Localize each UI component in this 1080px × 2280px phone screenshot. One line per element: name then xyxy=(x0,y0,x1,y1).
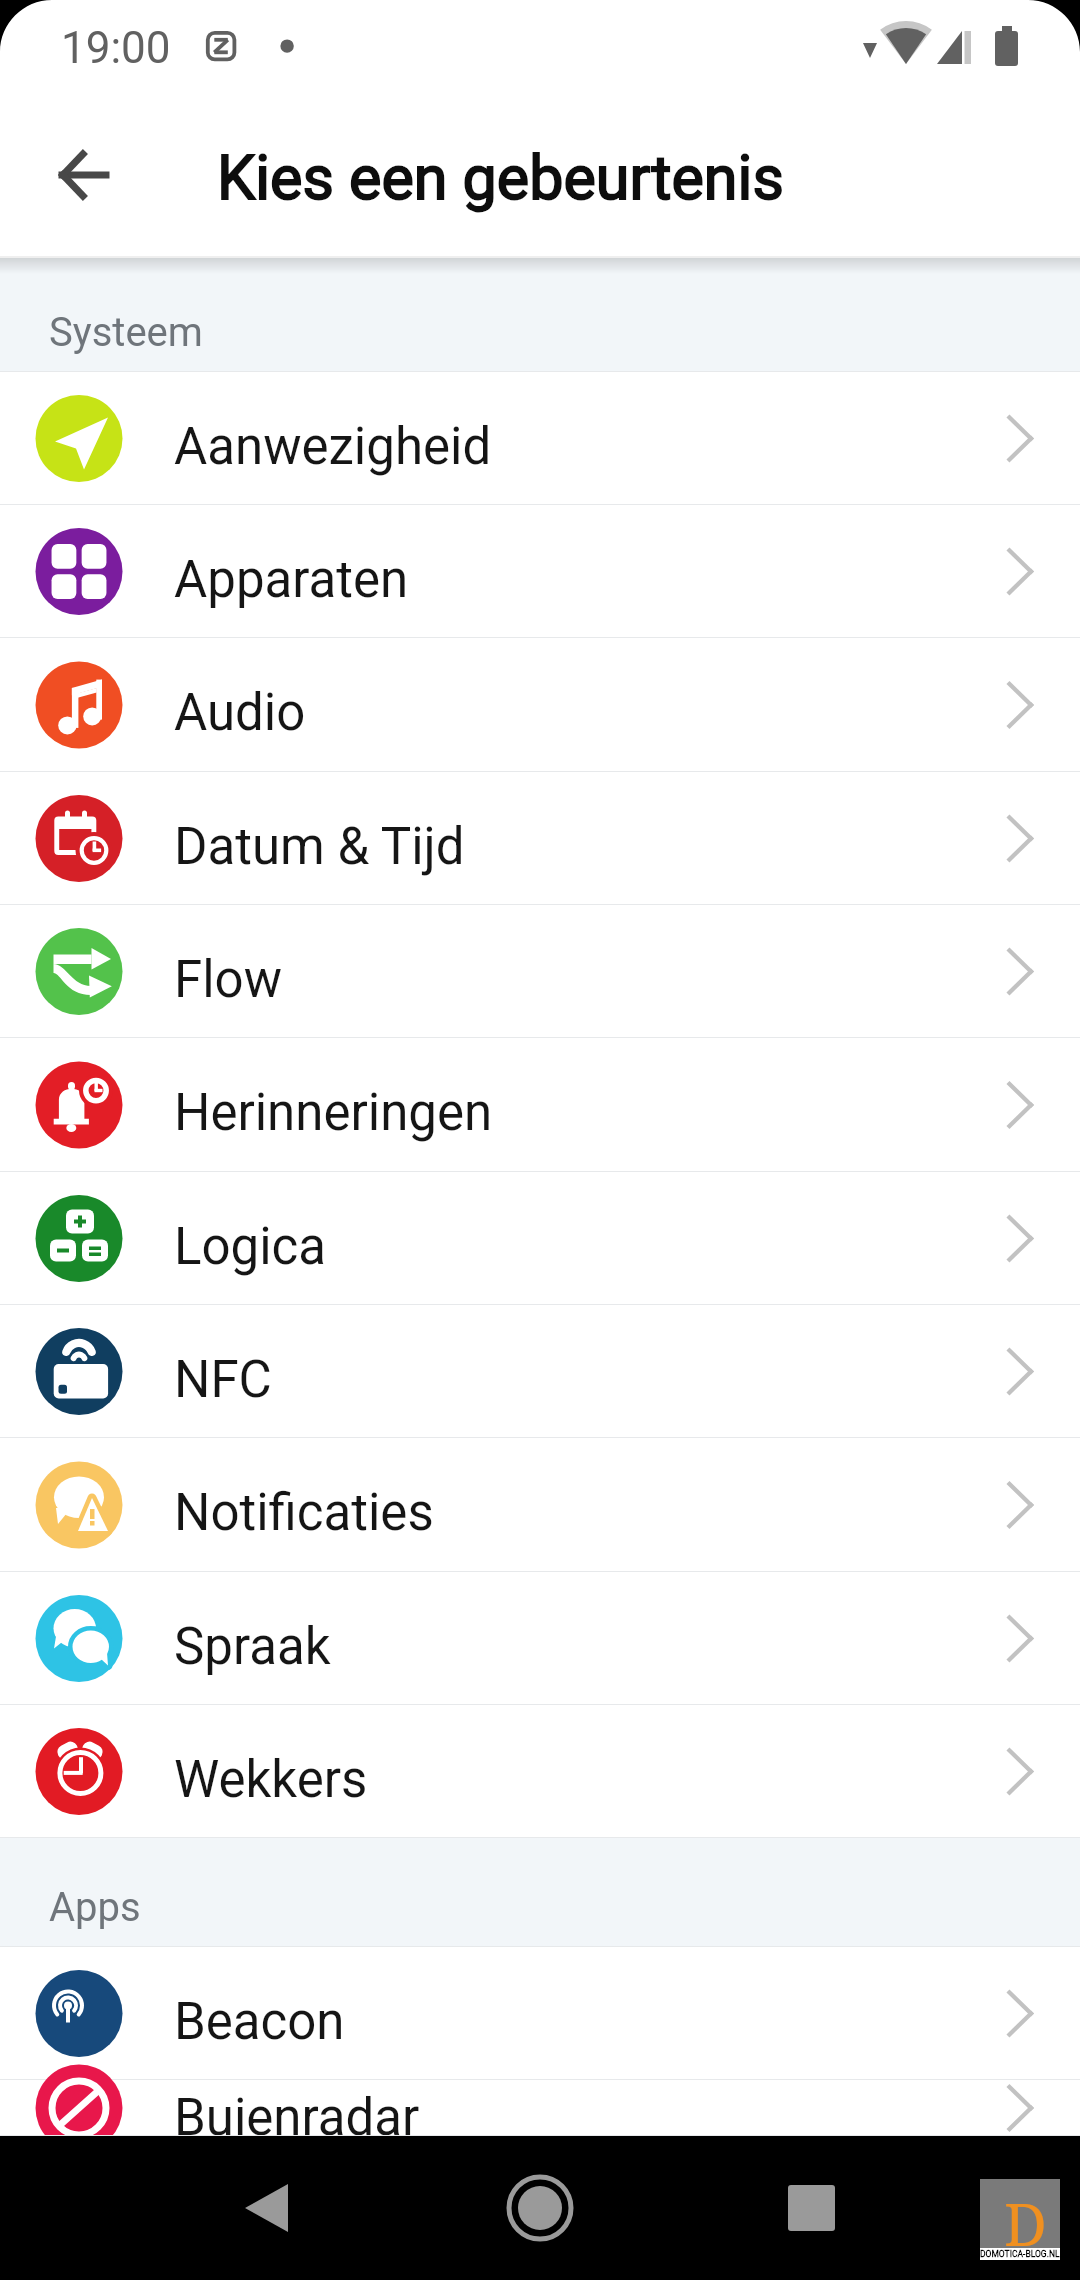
staticText: NFC xyxy=(174,1350,272,1410)
button[interactable]: Back xyxy=(200,2138,340,2278)
staticText: Datum & Tijd xyxy=(174,817,465,877)
button[interactable]: Recent apps xyxy=(741,2138,881,2278)
button[interactable]: Wekkers xyxy=(0,1705,1080,1838)
staticText: Wekkers xyxy=(174,1750,368,1810)
button[interactable]: Back xyxy=(33,125,133,225)
button[interactable]: Flow xyxy=(0,905,1080,1038)
staticText: D xyxy=(1004,2183,1047,2263)
button[interactable]: Datum & Tijd xyxy=(0,772,1080,905)
staticText: Notificaties xyxy=(174,1483,434,1543)
button[interactable]: Buienradar xyxy=(0,2080,1080,2136)
staticText: Apps xyxy=(49,1884,141,1931)
staticText: Flow xyxy=(174,950,283,1010)
button[interactable]: Apparaten xyxy=(0,505,1080,638)
button[interactable]: Herinneringen xyxy=(0,1038,1080,1172)
button[interactable]: Home xyxy=(470,2138,610,2278)
staticText: Beacon xyxy=(174,1992,345,2052)
staticText: Logica xyxy=(174,1217,327,1277)
staticText: Herinneringen xyxy=(174,1083,493,1143)
button[interactable]: Audio xyxy=(0,638,1080,772)
staticText: Audio xyxy=(174,683,306,743)
staticText: 19:00 xyxy=(61,22,171,74)
staticText: Aanwezigheid xyxy=(174,417,492,477)
button[interactable]: Beacon xyxy=(0,1947,1080,2080)
button[interactable]: NFC xyxy=(0,1305,1080,1438)
button[interactable]: Spraak xyxy=(0,1572,1080,1705)
staticText: Kies een gebeurtenis xyxy=(217,142,784,213)
staticText: Buienradar xyxy=(174,2088,420,2144)
staticText: Spraak xyxy=(174,1617,331,1677)
staticText: Systeem xyxy=(49,309,203,356)
staticText: Apparaten xyxy=(174,550,409,610)
button[interactable]: Notificaties xyxy=(0,1438,1080,1572)
staticText: DOMOTICA-BLOG.NL xyxy=(980,2249,1060,2259)
button[interactable]: Aanwezigheid xyxy=(0,372,1080,505)
button[interactable]: Logica xyxy=(0,1172,1080,1305)
